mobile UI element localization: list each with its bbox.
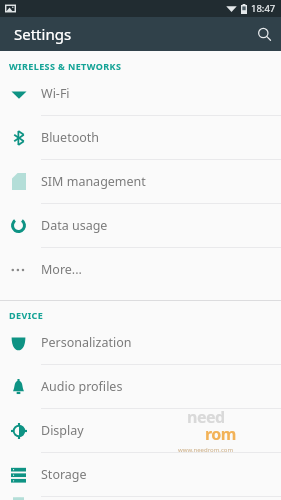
- staticText: 18:47: [251, 2, 276, 15]
- staticText: WIRELESS & NETWORKS: [9, 60, 122, 72]
- staticText: Audio profiles: [41, 378, 123, 395]
- button[interactable]: Battery: [0, 497, 281, 500]
- staticText: need: [187, 406, 225, 428]
- button[interactable]: More...: [0, 248, 281, 291]
- button[interactable]: Data usage: [0, 204, 281, 247]
- staticText: Personalization: [41, 334, 132, 351]
- staticText: DEVICE: [9, 309, 44, 321]
- button[interactable]: Personalization: [0, 321, 281, 364]
- staticText: More...: [41, 261, 82, 278]
- staticText: Settings: [14, 24, 72, 44]
- button[interactable]: Wi-Fi: [0, 72, 281, 115]
- staticText: Data usage: [41, 217, 108, 234]
- staticText: Display: [41, 422, 84, 439]
- button[interactable]: Audio profiles: [0, 365, 281, 408]
- staticText: www.needrom.com: [178, 446, 234, 454]
- staticText: rom: [205, 423, 236, 445]
- staticText: SIM management: [41, 173, 146, 190]
- button[interactable]: Search: [247, 17, 281, 51]
- button[interactable]: Bluetooth: [0, 116, 281, 159]
- staticText: Storage: [41, 466, 87, 483]
- staticText: Wi-Fi: [41, 85, 70, 102]
- button[interactable]: Display: [0, 409, 281, 452]
- button[interactable]: Storage: [0, 453, 281, 496]
- staticText: Bluetooth: [41, 129, 100, 146]
- button[interactable]: SIM management: [0, 160, 281, 203]
